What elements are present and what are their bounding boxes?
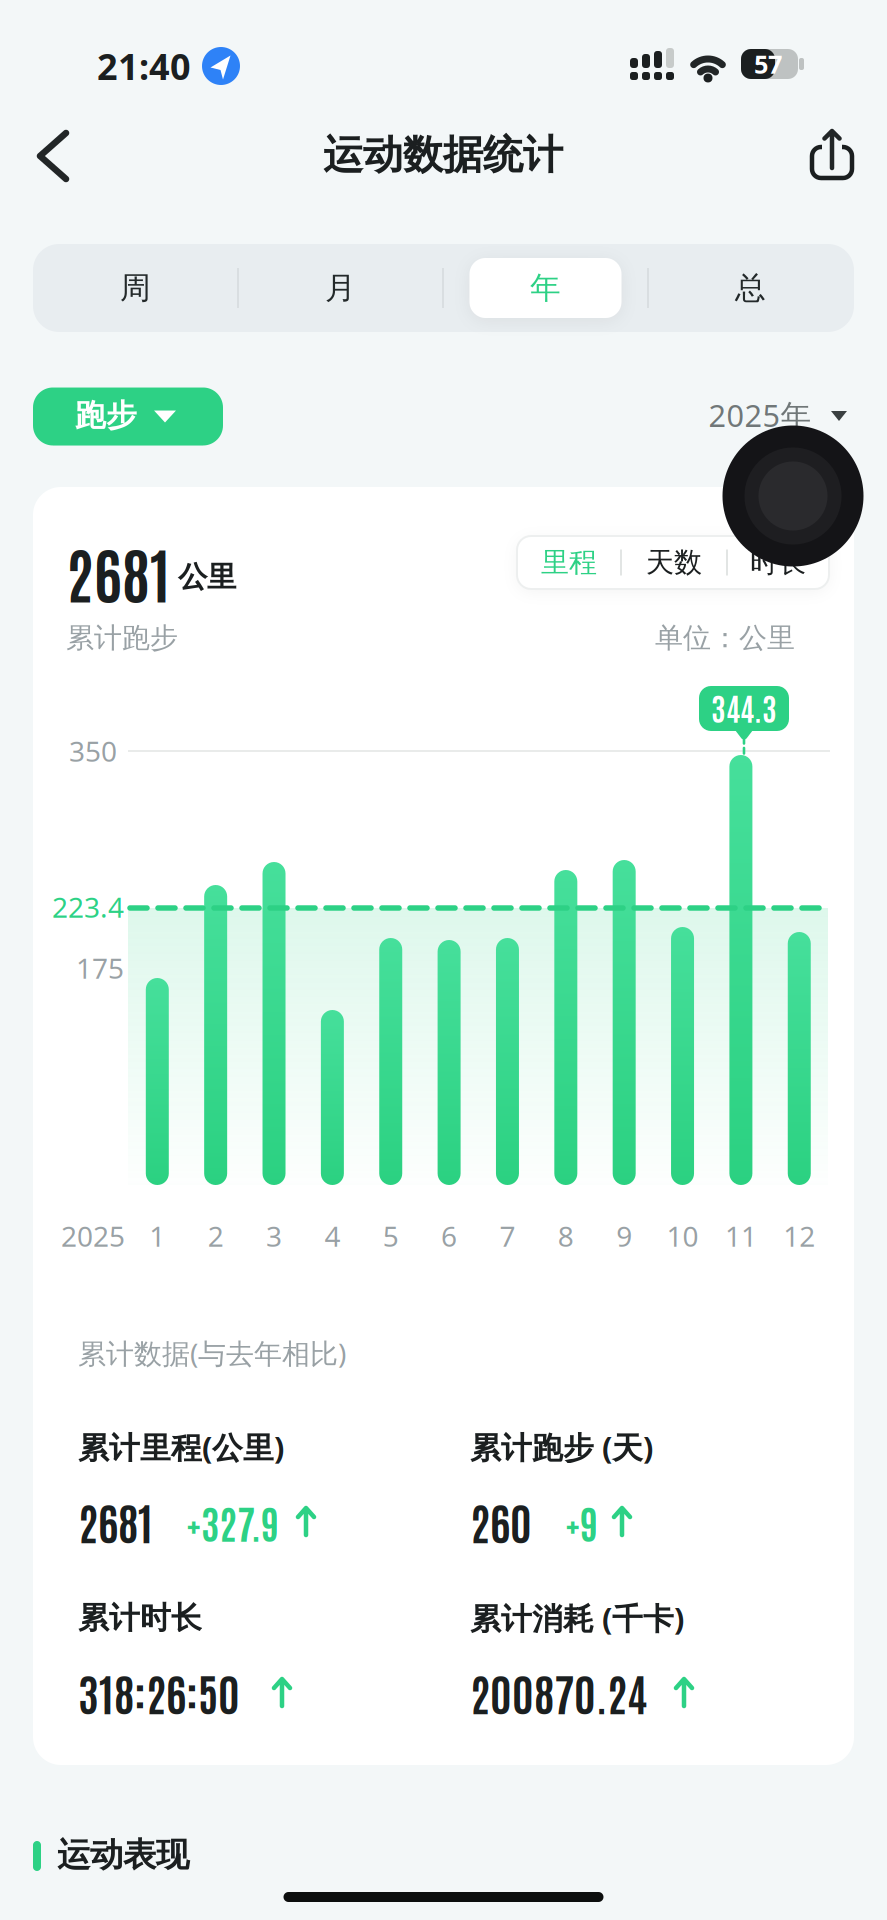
staticText: 8: [558, 1217, 574, 1255]
staticText: 350: [69, 732, 117, 770]
staticText: 2025年: [708, 395, 811, 435]
button[interactable]: 月: [240, 244, 440, 332]
staticText: 单位：公里: [655, 621, 795, 655]
staticText: 12: [783, 1217, 815, 1255]
staticText: 1: [149, 1217, 165, 1255]
staticText: 21:40: [97, 42, 191, 90]
button[interactable]: 2025年: [710, 393, 855, 437]
staticText: 10: [666, 1217, 698, 1255]
button[interactable]: 跑步: [33, 387, 223, 445]
staticText: 累计跑步: [66, 621, 178, 655]
staticText: 9: [616, 1217, 632, 1255]
staticText: 4: [324, 1217, 340, 1255]
staticText: 累计数据(与去年相比): [78, 1334, 346, 1372]
button[interactable]: 里程: [518, 536, 620, 589]
staticText: +9: [565, 1497, 598, 1547]
staticText: 2: [208, 1217, 224, 1255]
staticText: 里程: [541, 545, 597, 580]
staticText: 2681: [78, 1492, 153, 1549]
staticText: 6: [441, 1217, 457, 1255]
staticText: 运动表现: [57, 1834, 189, 1875]
staticText: 2681: [66, 533, 170, 611]
staticText: 累计跑步 (天): [470, 1427, 653, 1467]
staticText: 2025: [61, 1217, 125, 1255]
staticText: 周: [120, 269, 151, 307]
staticText: 跑步: [75, 397, 137, 434]
staticText: 天数: [646, 545, 702, 580]
button[interactable]: 天数: [623, 536, 725, 589]
staticText: 年: [530, 269, 561, 307]
staticText: 累计消耗 (千卡): [470, 1598, 684, 1638]
staticText: 57: [754, 47, 782, 81]
staticText: 月: [325, 269, 356, 307]
staticText: 11: [725, 1217, 757, 1255]
button[interactable]: 分享: [802, 124, 862, 184]
button[interactable]: 悬浮球: [723, 426, 863, 566]
button[interactable]: 返回: [26, 123, 92, 189]
staticText: 总: [735, 269, 766, 307]
staticText: 公里: [178, 559, 236, 595]
button[interactable]: 时长: [727, 536, 829, 589]
staticText: 5: [383, 1217, 399, 1255]
staticText: 累计时长: [78, 1599, 202, 1637]
staticText: 3: [266, 1217, 282, 1255]
staticText: 260: [470, 1492, 532, 1549]
staticText: 累计里程(公里): [78, 1427, 284, 1467]
staticText: 175: [76, 949, 124, 987]
button[interactable]: 总: [650, 244, 850, 332]
staticText: +327.9: [186, 1497, 279, 1547]
staticText: 344.3: [711, 687, 777, 727]
button[interactable]: 年: [445, 244, 645, 332]
staticText: 时长: [750, 545, 806, 580]
staticText: 200870.24: [470, 1663, 647, 1720]
staticText: 318:26:50: [78, 1663, 240, 1720]
staticText: 223.4: [52, 888, 124, 926]
staticText: 运动数据统计: [323, 130, 563, 179]
button[interactable]: 周: [35, 244, 235, 332]
staticText: 7: [499, 1217, 515, 1255]
